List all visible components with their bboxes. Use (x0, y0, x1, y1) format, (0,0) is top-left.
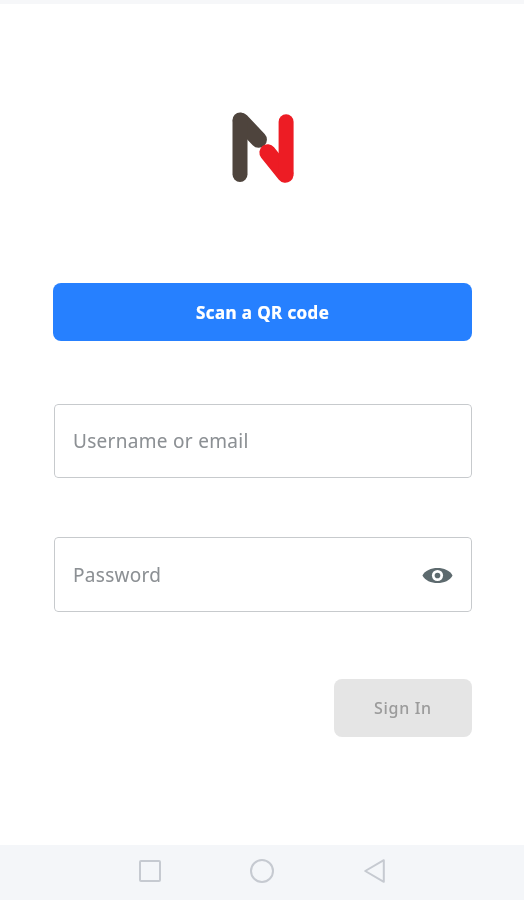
staticText: Scan a QR code (196, 301, 330, 324)
button[interactable]: Back (342, 849, 406, 893)
button[interactable]: Scan a QR code (53, 283, 472, 341)
button[interactable]: Sign In (334, 679, 472, 737)
staticText: Sign In (374, 697, 432, 719)
button[interactable]: Show password (417, 555, 457, 595)
button[interactable]: Home (230, 849, 294, 893)
button[interactable]: Recent apps (118, 849, 182, 893)
staticText: Username or email (73, 428, 249, 454)
button[interactable]: Username or email (54, 404, 472, 478)
button[interactable]: Password (54, 537, 472, 612)
staticText: Password (73, 562, 162, 588)
